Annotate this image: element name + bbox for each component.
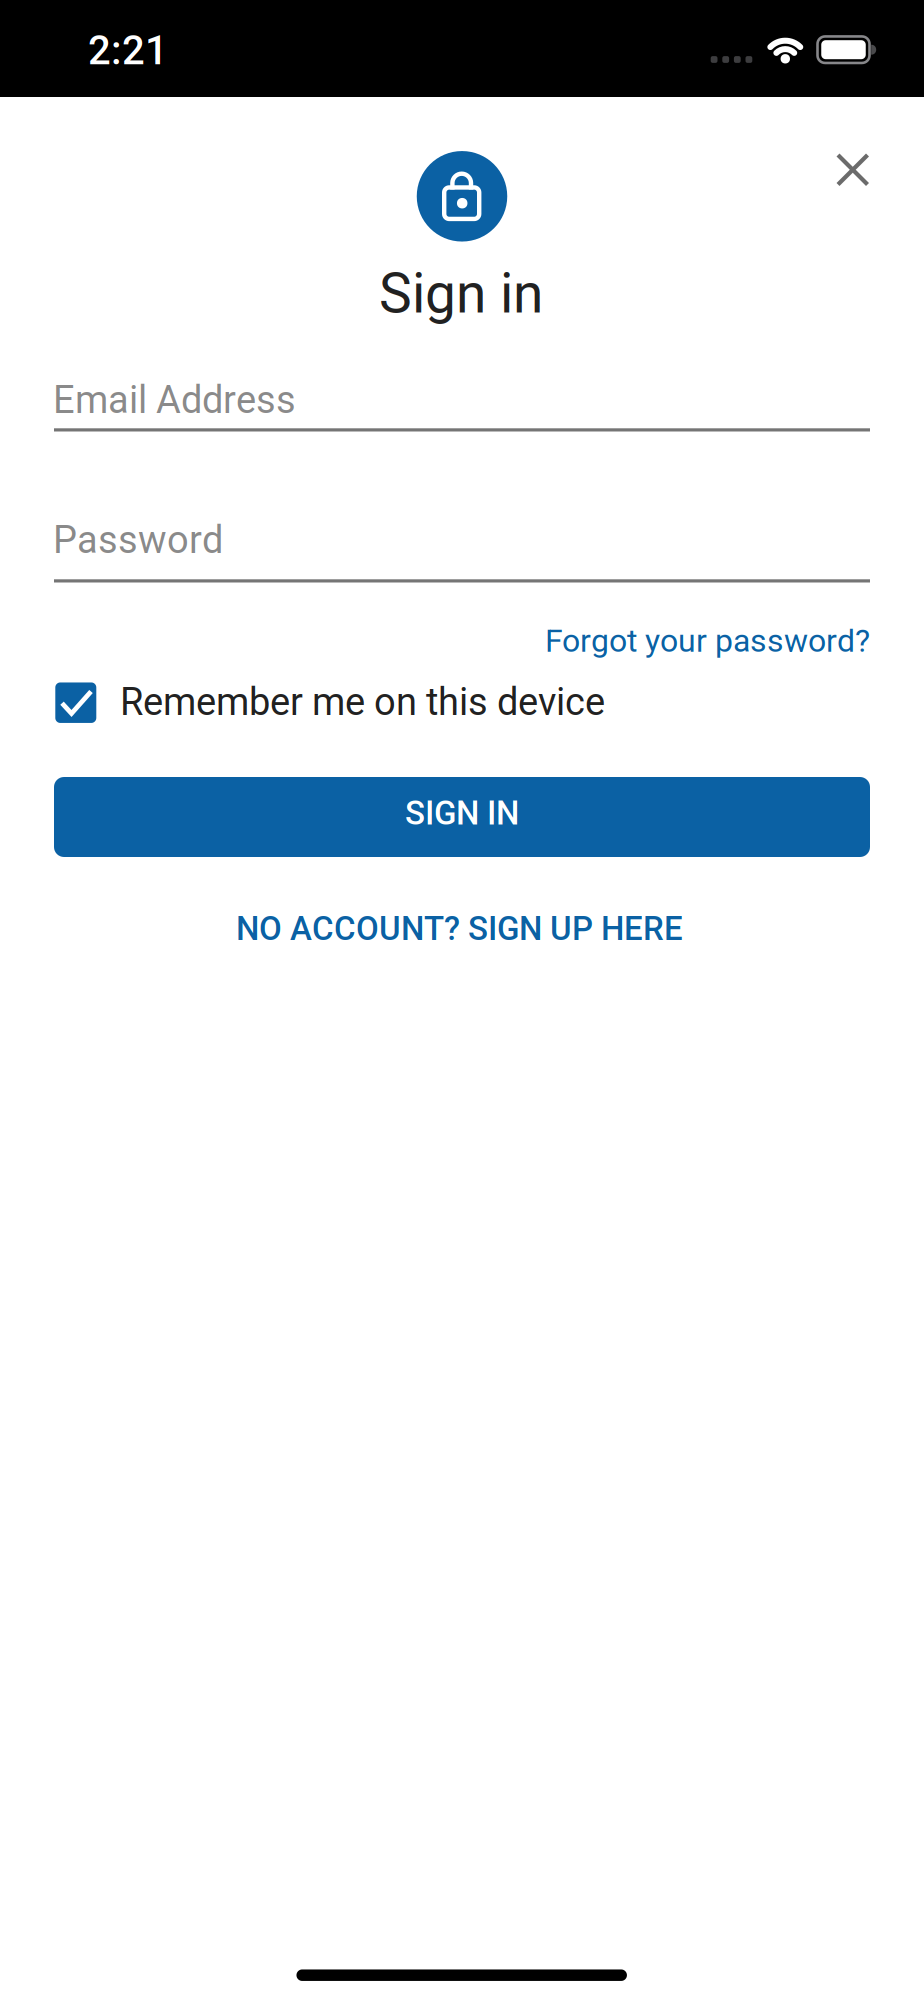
staticText: 2:21 [88,27,168,74]
staticText: Email Address [53,378,296,422]
staticText: SIGN IN [405,794,519,833]
staticText: Password [53,518,223,562]
staticText: Forgot your password? [545,622,870,659]
staticText: Remember me on this device [120,680,605,724]
staticText: Sign in [379,261,543,326]
staticText: NO ACCOUNT? SIGN UP HERE [236,909,683,948]
